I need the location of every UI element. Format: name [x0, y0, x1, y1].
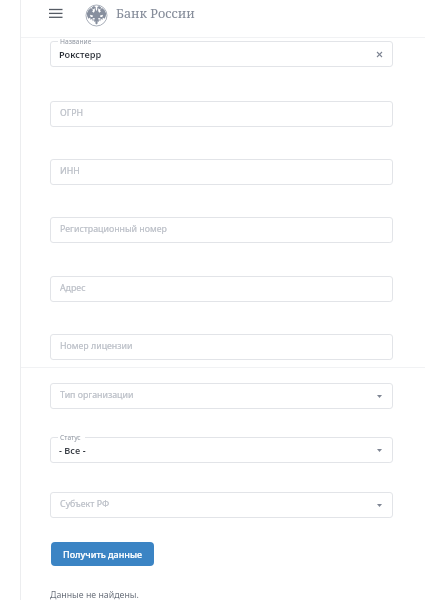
staticText: Рокстерр	[59, 48, 102, 61]
staticText: Адрес	[60, 282, 86, 294]
button[interactable]: Номер лицензии	[50, 334, 393, 360]
button[interactable]: Получить данные	[51, 542, 154, 566]
button[interactable]: ОГРН	[50, 101, 393, 127]
staticText: ИНН	[60, 165, 80, 177]
button[interactable]: Тип организации	[50, 383, 393, 409]
button[interactable]: Регистрационный номер	[50, 217, 393, 243]
staticText: Статус	[60, 433, 81, 442]
staticText: Получить данные	[63, 548, 143, 560]
staticText: Тип организации	[60, 389, 134, 401]
staticText: Банк России	[116, 5, 195, 22]
button[interactable]: Bank of Russia logo	[85, 4, 108, 27]
staticText: Название	[60, 37, 92, 46]
staticText: ОГРН	[60, 107, 84, 119]
staticText: Номер лицензии	[60, 340, 133, 352]
button[interactable]: Адрес	[50, 276, 393, 302]
button[interactable]: Menu	[44, 3, 68, 24]
button[interactable]: Название	[50, 41, 393, 67]
staticText: Субъект РФ	[60, 498, 110, 510]
staticText: Данные не найдены.	[50, 589, 139, 600]
staticText: Регистрационный номер	[60, 223, 167, 235]
button[interactable]: Clear	[370, 45, 388, 63]
button[interactable]: Статус	[50, 437, 393, 463]
button[interactable]: ИНН	[50, 159, 393, 185]
staticText: - Все -	[59, 444, 86, 457]
button[interactable]: Субъект РФ	[50, 492, 393, 518]
